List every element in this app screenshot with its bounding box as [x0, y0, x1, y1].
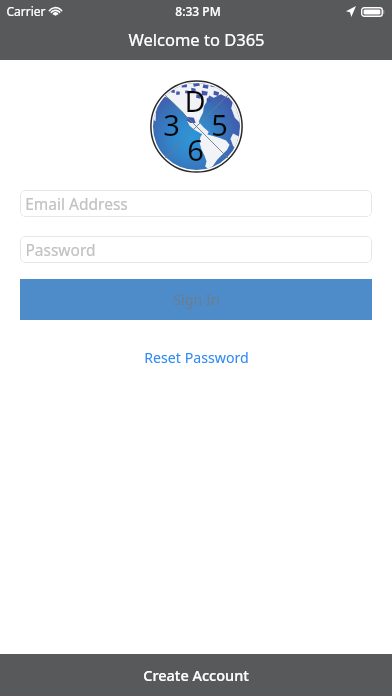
staticText: 8:33 PM [175, 3, 221, 19]
staticText: Sign In [173, 290, 220, 309]
staticText: D [184, 81, 206, 117]
staticText: 6 [187, 130, 204, 166]
button[interactable]: Password [20, 236, 372, 263]
staticText: 5 [211, 105, 228, 141]
staticText: Carrier [6, 3, 46, 19]
staticText: 3 [163, 105, 180, 141]
button[interactable]: Create Account [0, 654, 392, 696]
staticText: Password [25, 239, 96, 260]
button[interactable]: Email Address [20, 190, 372, 217]
staticText: Create Account [143, 665, 249, 685]
button[interactable]: Reset Password [126, 343, 266, 371]
staticText: Welcome to D365 [128, 28, 265, 50]
staticText: Reset Password [144, 348, 249, 367]
other: D365 logo [150, 80, 243, 173]
staticText: Email Address [25, 193, 128, 214]
button[interactable]: Sign In [20, 279, 372, 320]
